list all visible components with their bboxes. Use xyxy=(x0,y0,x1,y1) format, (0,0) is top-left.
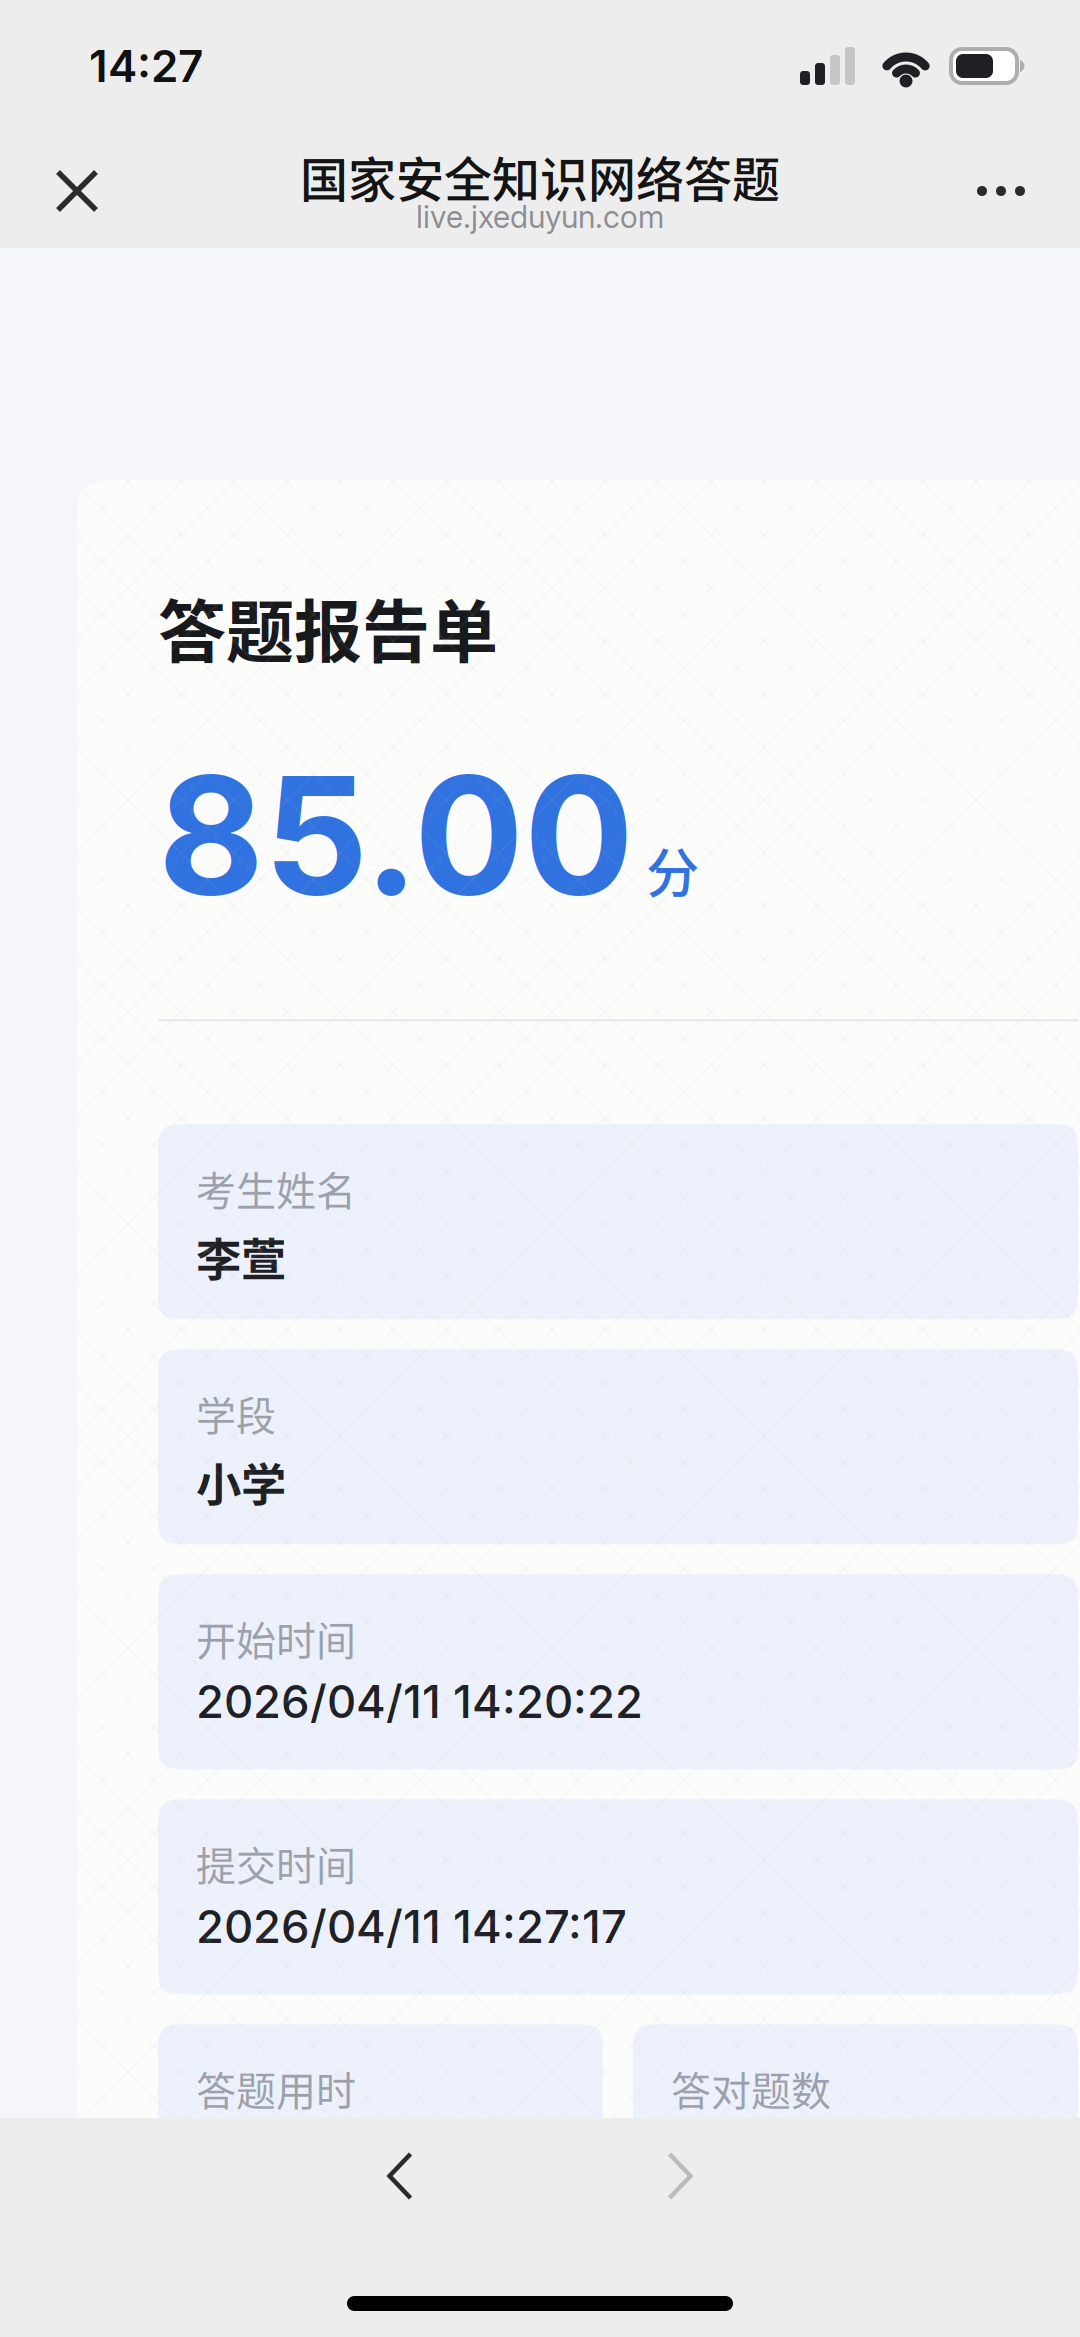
staticText: 答题用时 xyxy=(196,2059,356,2117)
staticText: 小学 xyxy=(196,1449,286,1515)
staticText: 分 xyxy=(646,831,699,908)
staticText: 提交时间 xyxy=(196,1834,356,1892)
staticText: 学段 xyxy=(196,1384,276,1442)
staticText: live.jxeduyun.com xyxy=(416,198,664,235)
staticText: 2026/04/11 14:27:17 xyxy=(196,1899,627,1954)
button[interactable]: More xyxy=(941,136,1061,246)
button[interactable]: Forward xyxy=(610,2120,750,2232)
button[interactable]: Close xyxy=(22,136,132,246)
staticText: 14:27 xyxy=(89,39,203,93)
staticText: 答对题数 xyxy=(671,2059,831,2117)
staticText: 考生姓名 xyxy=(196,1159,356,1217)
staticText: 85.00 xyxy=(158,736,634,933)
staticText: 答题报告单 xyxy=(158,578,498,676)
staticText: 17 xyxy=(671,2124,725,2190)
staticText: 2026/04/11 14:20:22 xyxy=(196,1674,643,1729)
button[interactable]: Back xyxy=(330,2120,470,2232)
staticText: 李萱 xyxy=(196,1224,286,1290)
staticText: 国家安全知识网络答题 xyxy=(300,142,780,211)
staticText: 开始时间 xyxy=(196,1609,356,1667)
